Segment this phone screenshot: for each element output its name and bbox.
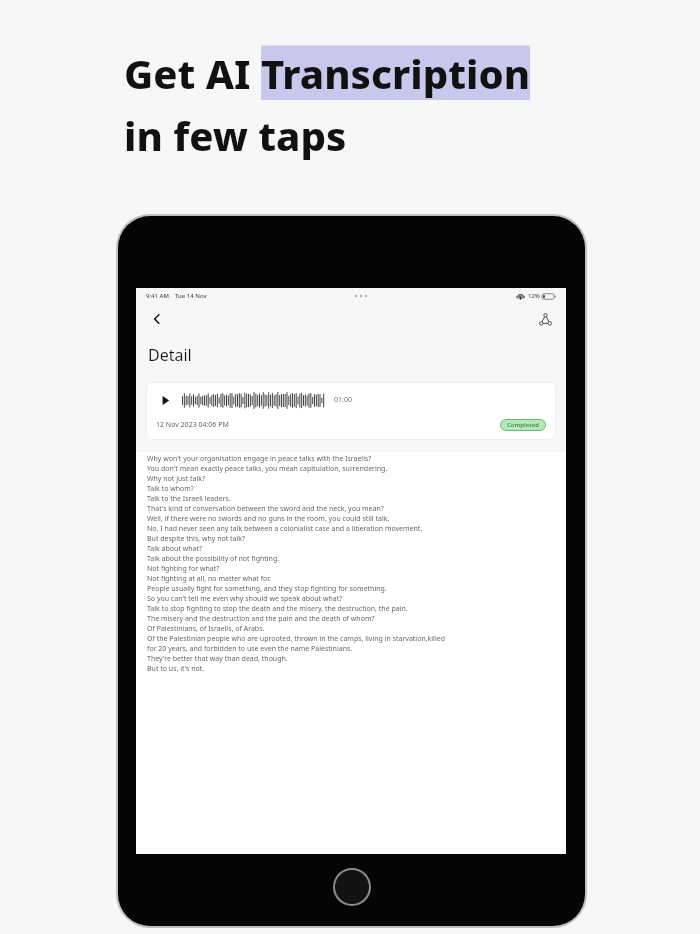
staticText: Talk to whom? bbox=[147, 484, 194, 494]
staticText: Why not just talk? bbox=[147, 474, 206, 484]
button[interactable]: Completed bbox=[507, 421, 539, 429]
staticText: Talk to stop fighting to stop the death … bbox=[147, 604, 408, 614]
staticText: Of Palestinians, of Israelis, of Arabs. bbox=[147, 624, 265, 634]
staticText: in few taps bbox=[124, 108, 347, 162]
staticText: They're better that way than dead, thoug… bbox=[147, 654, 288, 664]
staticText: Not fighting at all, no matter what for. bbox=[147, 574, 271, 584]
staticText: But despite this, why not talk? bbox=[147, 534, 246, 544]
staticText: No, I had never seen any talk between a … bbox=[147, 524, 423, 534]
button[interactable]: Home bbox=[335, 870, 369, 904]
staticText: 12 Nov 2023 04:06 PM bbox=[156, 420, 229, 430]
staticText: That's kind of conversation between the … bbox=[147, 504, 384, 514]
staticText: Not fighting for what? bbox=[147, 564, 220, 574]
staticText: The misery and the destruction and the p… bbox=[147, 614, 375, 624]
button[interactable]: Play bbox=[156, 391, 174, 409]
staticText: Of the Palestinian people who are uproot… bbox=[147, 634, 445, 644]
staticText: Well, if there were no swords and no gun… bbox=[147, 514, 390, 524]
staticText: for 20 years, and forbidden to use even … bbox=[147, 644, 353, 654]
staticText: You don't mean exactly peace talks, you … bbox=[147, 464, 388, 474]
button[interactable]: Play bbox=[146, 382, 556, 440]
staticText: Tue 14 Nov bbox=[175, 292, 207, 300]
staticText: So you can't tell me even why should we … bbox=[147, 594, 343, 604]
staticText: Talk about what? bbox=[147, 544, 203, 554]
staticText: 01:00 bbox=[334, 395, 352, 405]
staticText: Completed bbox=[507, 421, 539, 429]
staticText: 9:41 AM bbox=[146, 292, 169, 300]
staticText: Why won't your organisation engage in pe… bbox=[147, 454, 372, 464]
staticText: People usually fight for something, and … bbox=[147, 584, 387, 594]
button[interactable]: Back bbox=[146, 308, 168, 330]
staticText: But to us, it's not. bbox=[147, 664, 205, 674]
button[interactable]: Share bbox=[534, 308, 556, 330]
staticText: Talk about the possibility of not fighti… bbox=[147, 554, 280, 564]
staticText: Get AI Transcription bbox=[124, 46, 531, 100]
staticText: 12% bbox=[528, 292, 540, 300]
staticText: Detail bbox=[148, 344, 192, 366]
staticText: Talk to the Israeli leaders. bbox=[147, 494, 231, 504]
